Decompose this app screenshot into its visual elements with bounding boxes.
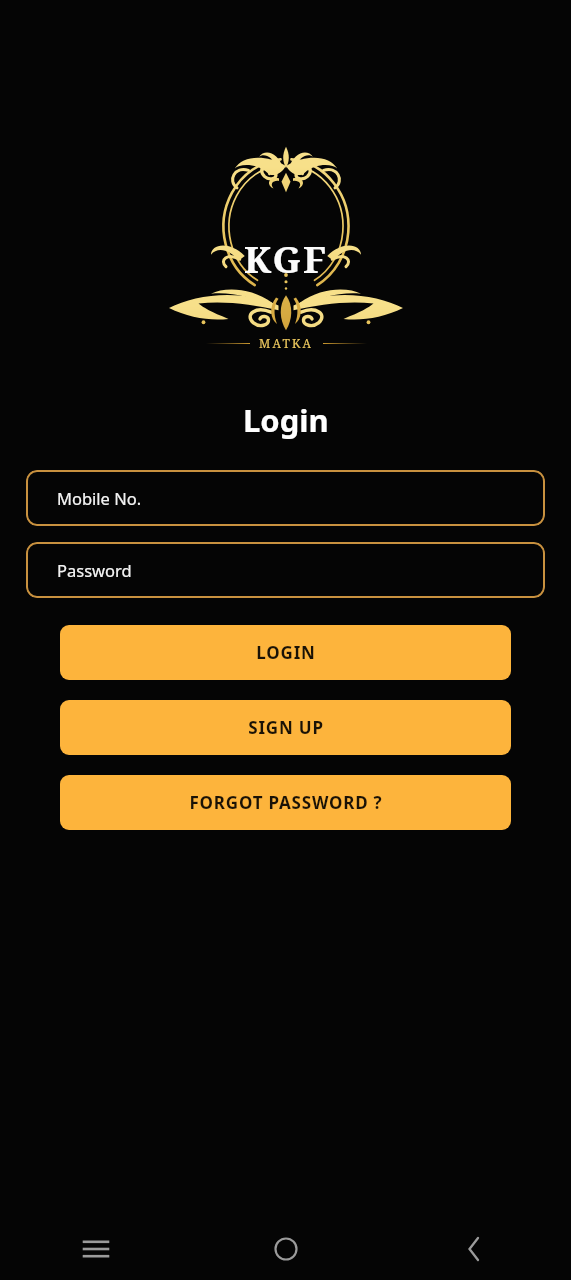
staticText: Mobile No. <box>57 487 142 509</box>
staticText: FORGOT PASSWORD ? <box>189 791 383 814</box>
staticText: KGF <box>244 233 328 283</box>
staticText: Password <box>57 559 132 581</box>
staticText: LOGIN <box>256 641 316 664</box>
button[interactable]: SIGN UP <box>60 700 511 755</box>
staticText: MATKA <box>259 335 314 351</box>
staticText: SIGN UP <box>248 716 324 739</box>
button[interactable]: Back <box>381 1218 571 1280</box>
button[interactable]: LOGIN <box>60 625 511 680</box>
button[interactable]: Home <box>191 1218 381 1280</box>
staticText: Login <box>243 399 329 441</box>
button[interactable]: Mobile No. <box>26 470 545 526</box>
button[interactable]: Password <box>26 542 545 598</box>
button[interactable]: FORGOT PASSWORD ? <box>60 775 511 830</box>
button[interactable]: Recent apps <box>0 1218 191 1280</box>
